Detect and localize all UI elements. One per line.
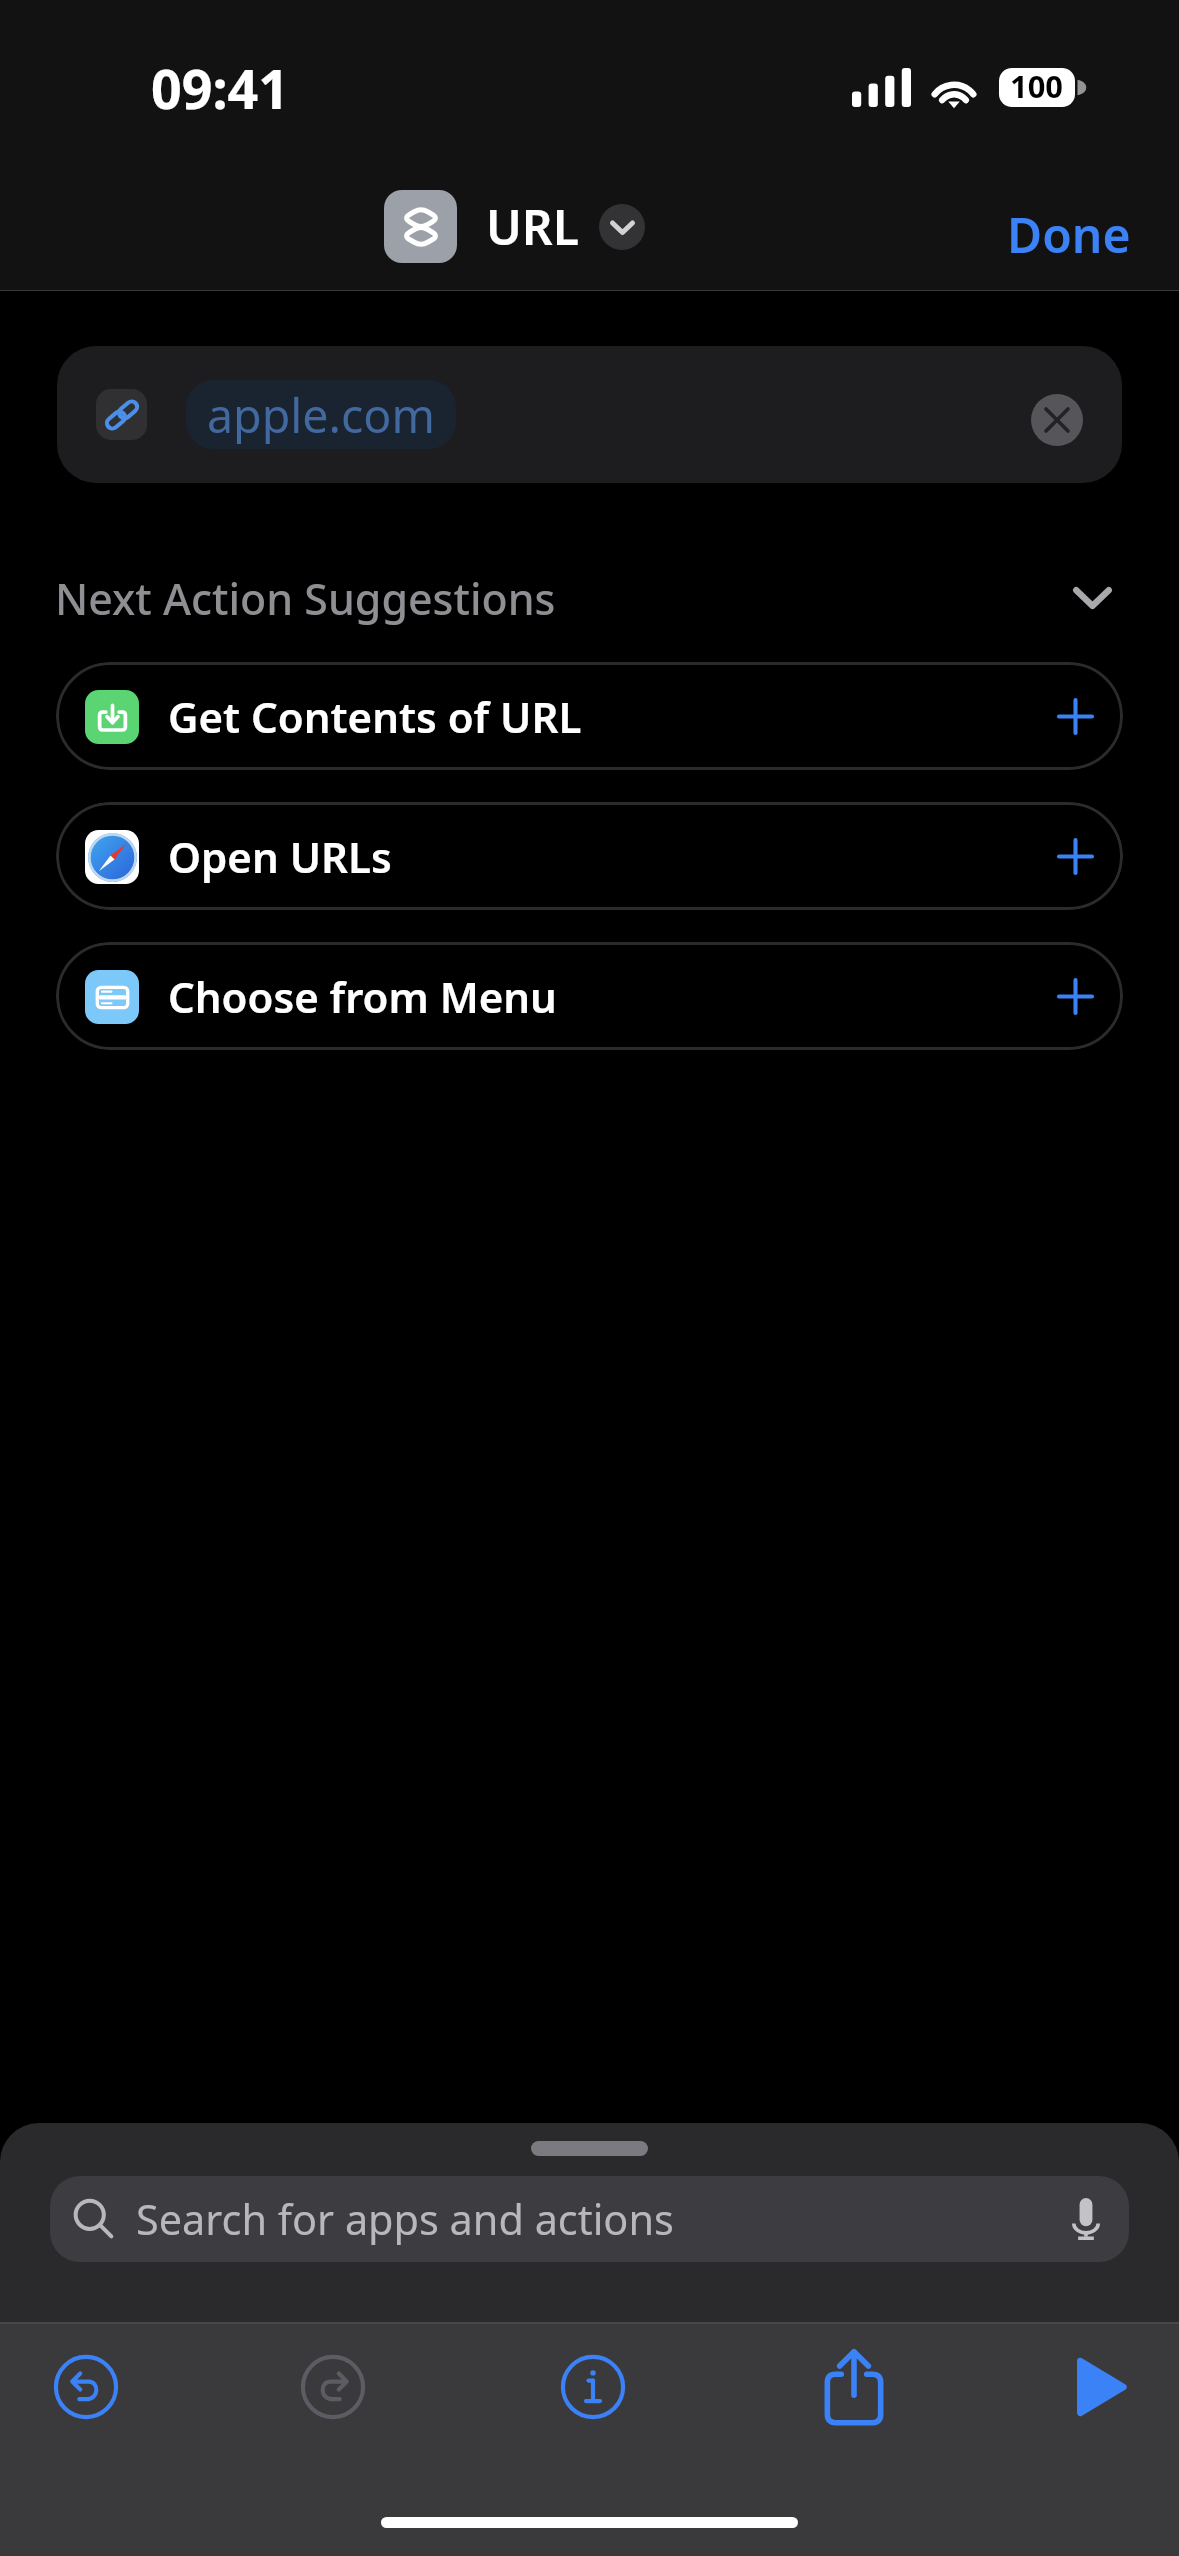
staticText: Open URLs xyxy=(168,828,392,885)
button[interactable]: Add Choose from Menu xyxy=(1042,963,1108,1029)
button[interactable]: Redo xyxy=(267,2321,399,2453)
button[interactable]: Add Get Contents of URL xyxy=(1042,683,1108,749)
button[interactable]: Search for apps and actions xyxy=(50,2176,1129,2262)
button[interactable]: Add Open URLs xyxy=(1042,823,1108,889)
staticText: Next Action Suggestions xyxy=(55,569,556,627)
staticText: 100 xyxy=(1010,65,1064,107)
button[interactable]: Shortcut icon xyxy=(384,190,457,263)
button[interactable]: Share xyxy=(788,2321,920,2453)
staticText: apple.com xyxy=(207,383,435,446)
staticText: Done xyxy=(1007,202,1131,267)
button[interactable]: Info xyxy=(527,2321,659,2453)
staticText: URL xyxy=(486,194,579,259)
button[interactable]: Run xyxy=(1033,2321,1165,2453)
staticText: Choose from Menu xyxy=(168,968,557,1025)
staticText: Search for apps and actions xyxy=(136,2191,674,2247)
button[interactable]: Voice search xyxy=(1072,2198,1100,2240)
button[interactable]: Undo xyxy=(20,2321,152,2453)
button[interactable]: Next Action Suggestions xyxy=(55,559,1131,637)
button[interactable]: Get Contents of URL xyxy=(56,662,1123,770)
staticText: 09:41 xyxy=(151,52,289,125)
button[interactable]: Collapse suggestions xyxy=(1053,559,1131,637)
staticText: Get Contents of URL xyxy=(168,688,582,745)
button[interactable]: apple.com xyxy=(57,346,1122,483)
button[interactable]: Clear xyxy=(1031,394,1083,446)
button[interactable]: Done xyxy=(959,187,1179,282)
button[interactable]: Open URLs xyxy=(56,802,1123,910)
button[interactable]: Choose from Menu xyxy=(56,942,1123,1050)
button[interactable]: Expand xyxy=(599,204,645,250)
